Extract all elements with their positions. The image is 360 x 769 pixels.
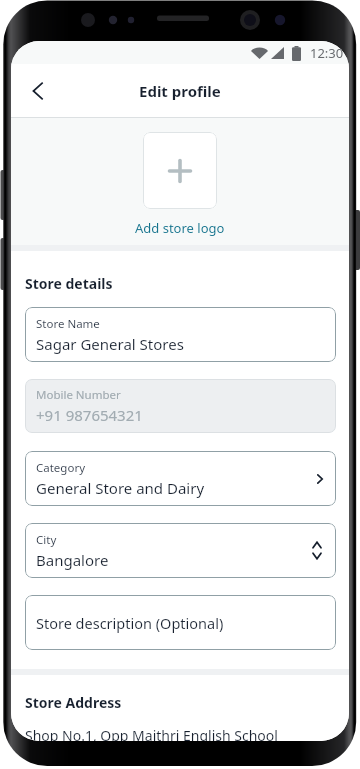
button[interactable]: City	[25, 523, 336, 578]
button[interactable]: Store description (Optional)	[25, 595, 336, 650]
staticText: Store details	[25, 274, 113, 293]
staticText: Mobile Number	[36, 387, 121, 403]
staticText: 12:30	[310, 44, 344, 62]
staticText: General Store and Dairy	[36, 478, 205, 498]
staticText: Edit profile	[139, 81, 221, 101]
staticText: Sagar General Stores	[36, 334, 184, 354]
staticText: Store Address	[25, 693, 122, 712]
button[interactable]: Category	[25, 451, 336, 506]
staticText: Store description (Optional)	[36, 613, 224, 633]
staticText: Add store logo	[135, 219, 225, 237]
button[interactable]: Add store logo	[143, 132, 217, 209]
button[interactable]: Back	[17, 70, 59, 112]
staticText: Bangalore	[36, 550, 109, 570]
button[interactable]: Store Name	[25, 307, 336, 362]
staticText: +91 987654321	[36, 405, 143, 425]
staticText: City	[36, 532, 57, 548]
staticText: Shop No.1, Opp Maithri English School	[25, 726, 278, 741]
staticText: Store Name	[36, 316, 100, 332]
staticText: Category	[36, 460, 86, 476]
